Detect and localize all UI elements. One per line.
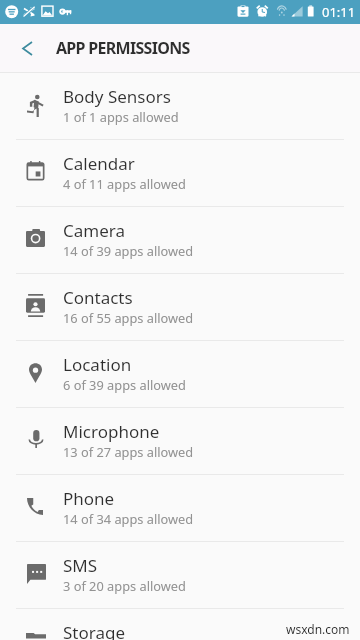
staticText: 4 of 11 apps allowed	[63, 175, 186, 192]
staticText: 13 of 27 apps allowed	[63, 443, 194, 460]
staticText: Body Sensors	[63, 85, 171, 108]
button[interactable]: Calendar	[0, 140, 360, 206]
button[interactable]: Camera	[0, 207, 360, 273]
button[interactable]: Location	[0, 341, 360, 407]
staticText: Location	[63, 353, 132, 376]
button[interactable]: Microphone	[0, 408, 360, 474]
staticText: 1 of 1 apps allowed	[63, 108, 179, 125]
staticText: 16 of 55 apps allowed	[63, 309, 194, 326]
staticText: APP PERMISSIONS	[56, 37, 190, 59]
staticText: SMS	[63, 554, 98, 577]
staticText: Storage	[63, 621, 126, 640]
button[interactable]: Phone	[0, 475, 360, 541]
staticText: Phone	[63, 487, 115, 510]
staticText: wsxdn.com	[286, 621, 350, 637]
staticText: 01:11	[322, 3, 356, 21]
staticText: 14 of 34 apps allowed	[63, 510, 194, 527]
staticText: 6 of 39 apps allowed	[63, 376, 186, 393]
staticText: Calendar	[63, 152, 135, 175]
staticText: Camera	[63, 219, 125, 242]
staticText: Microphone	[63, 420, 160, 443]
button[interactable]: Storage	[0, 609, 360, 640]
button[interactable]: Body Sensors	[0, 73, 360, 139]
button[interactable]: Contacts	[0, 274, 360, 340]
button[interactable]: SMS	[0, 542, 360, 608]
staticText: 14 of 39 apps allowed	[63, 242, 194, 259]
staticText: 3 of 20 apps allowed	[63, 577, 186, 594]
staticText: Contacts	[63, 286, 133, 309]
button[interactable]: Back	[0, 24, 52, 72]
